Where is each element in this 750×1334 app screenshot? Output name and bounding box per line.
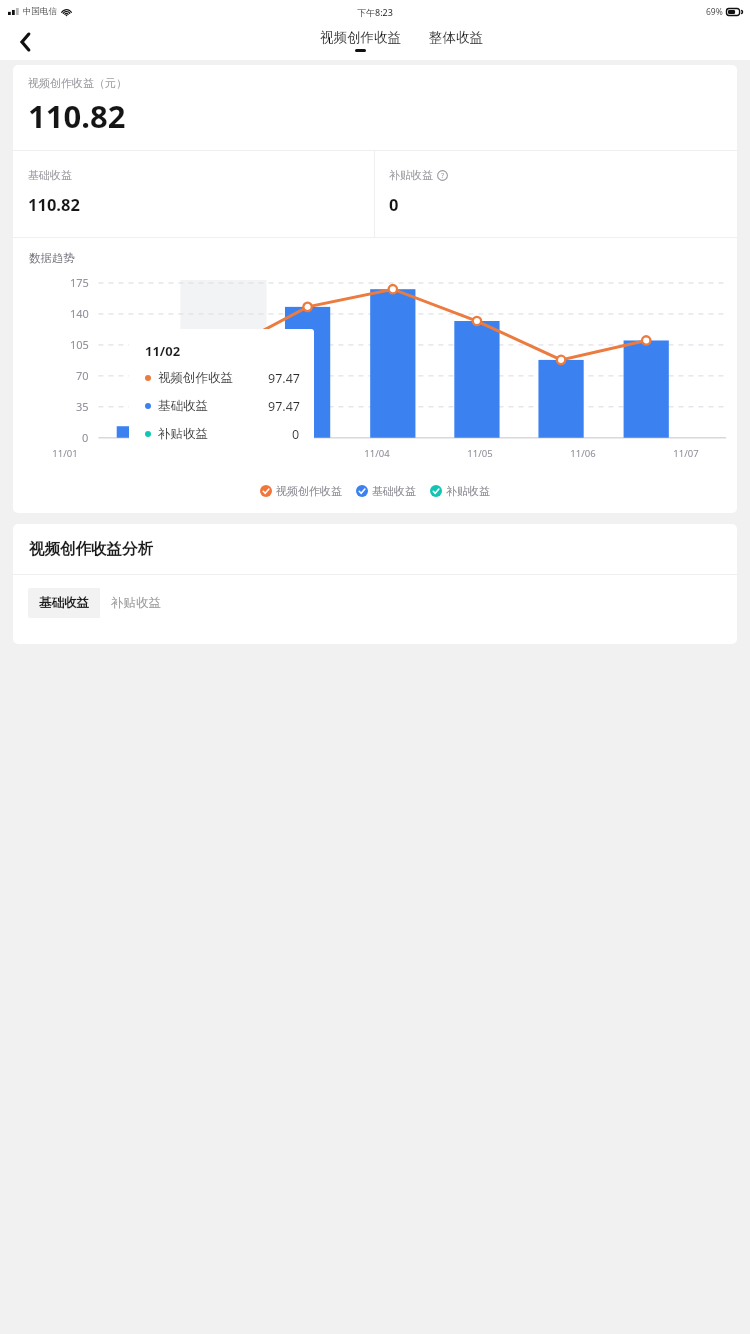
- staticText: 基础收益: [28, 168, 72, 182]
- staticText: 视频创作收益分析: [29, 539, 153, 559]
- staticText: 105: [70, 337, 89, 352]
- staticText: 110.82: [28, 193, 80, 215]
- staticText: 11/02: [145, 342, 181, 360]
- staticText: 97.47: [268, 370, 300, 387]
- button[interactable]: 基础收益: [356, 481, 416, 501]
- staticText: 视频创作收益（元）: [28, 76, 127, 90]
- staticText: 140: [70, 306, 89, 321]
- button[interactable]: 视频创作收益: [260, 481, 342, 501]
- staticText: 110.82: [28, 95, 126, 137]
- staticText: 0: [82, 430, 89, 445]
- button[interactable]: Back: [12, 29, 38, 55]
- staticText: 11/01: [52, 447, 78, 460]
- button[interactable]: 整体收益: [424, 30, 488, 51]
- staticText: 70: [76, 368, 89, 383]
- button[interactable]: 补贴收益: [100, 588, 172, 618]
- staticText: 补贴收益: [111, 595, 161, 611]
- staticText: 11/06: [570, 447, 596, 460]
- staticText: ?: [441, 171, 445, 181]
- staticText: 97.47: [268, 398, 300, 415]
- staticText: 11/07: [673, 447, 699, 460]
- staticText: 基础收益: [39, 595, 89, 611]
- button[interactable]: 补贴收益: [430, 481, 490, 501]
- staticText: 0: [389, 193, 399, 215]
- staticText: 视频创作收益: [158, 370, 233, 386]
- staticText: 基础收益: [158, 398, 208, 414]
- staticText: 175: [70, 275, 89, 290]
- staticText: 下午8:23: [357, 6, 393, 18]
- staticText: 11/04: [364, 447, 390, 460]
- staticText: 视频创作收益: [320, 29, 401, 46]
- staticText: 中国电信: [23, 6, 57, 17]
- button[interactable]: 说明: [437, 170, 448, 181]
- staticText: 基础收益: [372, 484, 416, 498]
- staticText: 补贴收益: [389, 168, 433, 182]
- staticText: 补贴收益: [446, 484, 490, 498]
- staticText: 数据趋势: [29, 251, 75, 265]
- staticText: 补贴收益: [158, 426, 208, 442]
- staticText: 35: [76, 399, 89, 414]
- staticText: 11/05: [467, 447, 493, 460]
- button[interactable]: 基础收益: [28, 588, 100, 618]
- staticText: 69%: [706, 6, 723, 18]
- button[interactable]: 视频创作收益: [315, 27, 406, 54]
- staticText: 0: [292, 426, 300, 443]
- staticText: 视频创作收益: [276, 484, 342, 498]
- staticText: 整体收益: [429, 29, 483, 46]
